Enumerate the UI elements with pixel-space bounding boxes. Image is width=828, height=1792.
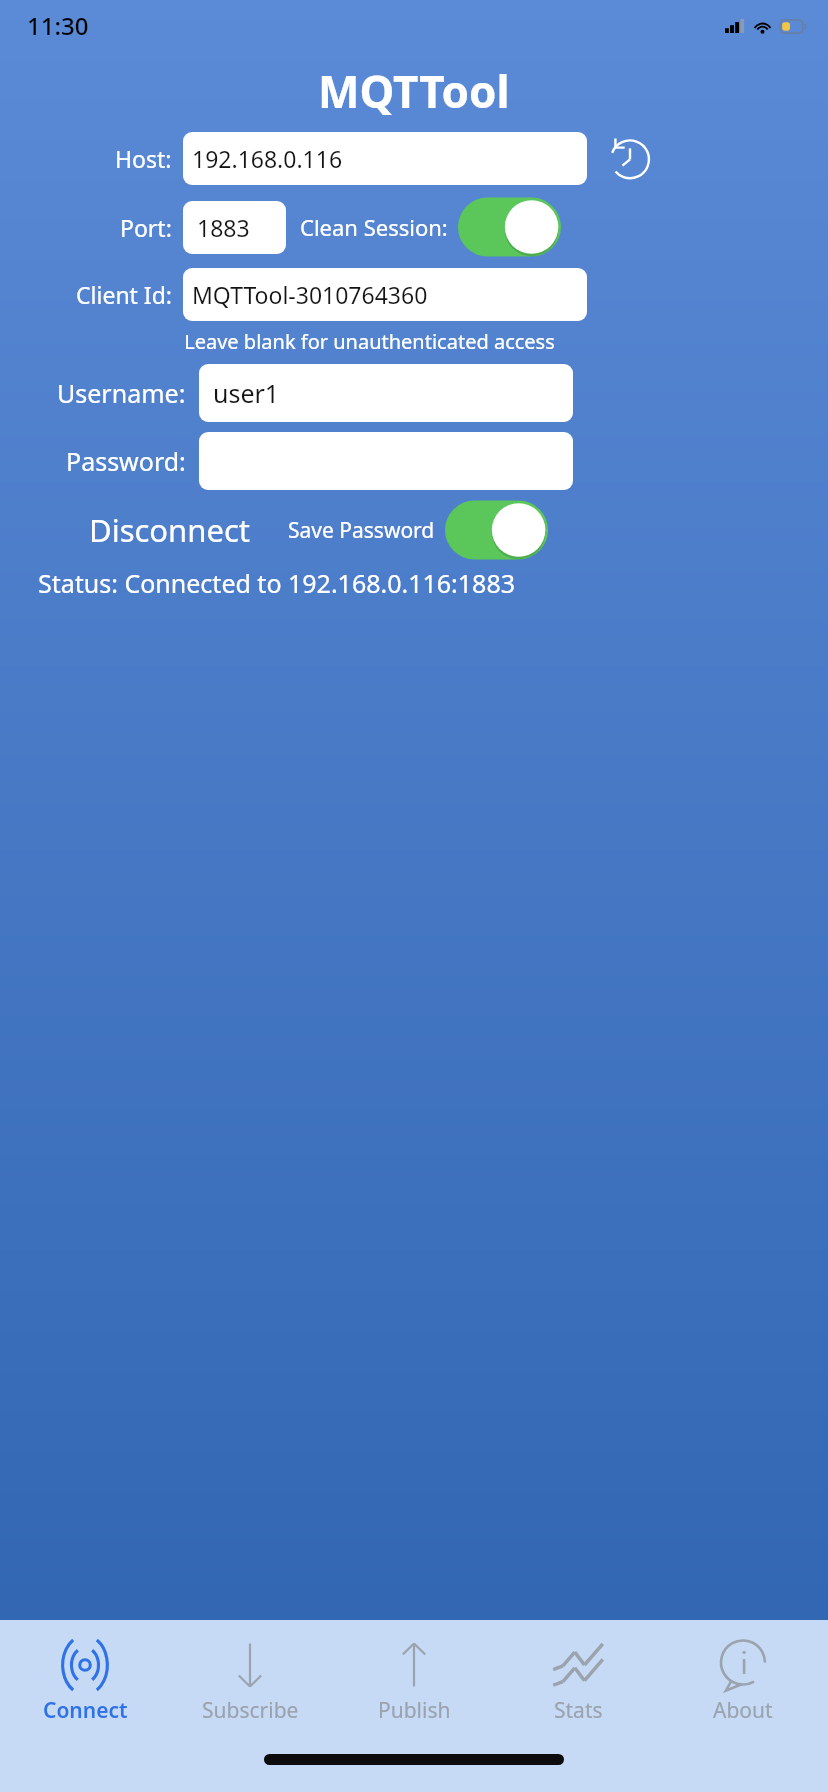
button[interactable]: user1 xyxy=(199,364,573,422)
button[interactable]: Stats xyxy=(499,1633,657,1725)
button[interactable]: Subscribe xyxy=(171,1633,329,1725)
staticText: About xyxy=(713,1696,773,1725)
button[interactable]: Connect xyxy=(6,1633,164,1725)
staticText: Host: xyxy=(115,143,172,174)
button[interactable]: 1883 xyxy=(183,201,286,254)
button[interactable]: History xyxy=(602,130,658,186)
staticText: Disconnect xyxy=(89,509,250,551)
staticText: user1 xyxy=(213,376,280,410)
staticText: Clean Session: xyxy=(300,212,448,242)
staticText: Password: xyxy=(66,444,186,478)
staticText: 192.168.0.116 xyxy=(192,143,343,174)
button[interactable]: Toggle xyxy=(458,197,561,257)
button[interactable] xyxy=(199,432,573,490)
staticText: MQTTool xyxy=(318,61,510,121)
staticText: Client Id: xyxy=(76,279,172,310)
button[interactable]: Disconnect xyxy=(85,503,254,557)
button[interactable]: MQTTool-3010764360 xyxy=(183,268,587,321)
staticText: Stats xyxy=(554,1696,603,1725)
staticText: Leave blank for unauthenticated access xyxy=(184,328,555,355)
staticText: Status: Connected to 192.168.0.116:1883 xyxy=(38,566,516,600)
staticText: Subscribe xyxy=(202,1696,299,1725)
staticText: Port: xyxy=(120,212,172,243)
staticText: 11:30 xyxy=(27,9,89,42)
button[interactable]: About xyxy=(664,1633,822,1725)
staticText: MQTTool-3010764360 xyxy=(192,279,428,310)
button[interactable]: 192.168.0.116 xyxy=(183,132,587,185)
staticText: Username: xyxy=(57,376,186,410)
button[interactable]: Toggle xyxy=(445,500,548,560)
staticText: Connect xyxy=(43,1696,128,1725)
staticText: 1883 xyxy=(197,212,250,243)
button[interactable]: Publish xyxy=(335,1633,493,1725)
staticText: Publish xyxy=(378,1696,451,1725)
staticText: Save Password xyxy=(288,516,435,545)
